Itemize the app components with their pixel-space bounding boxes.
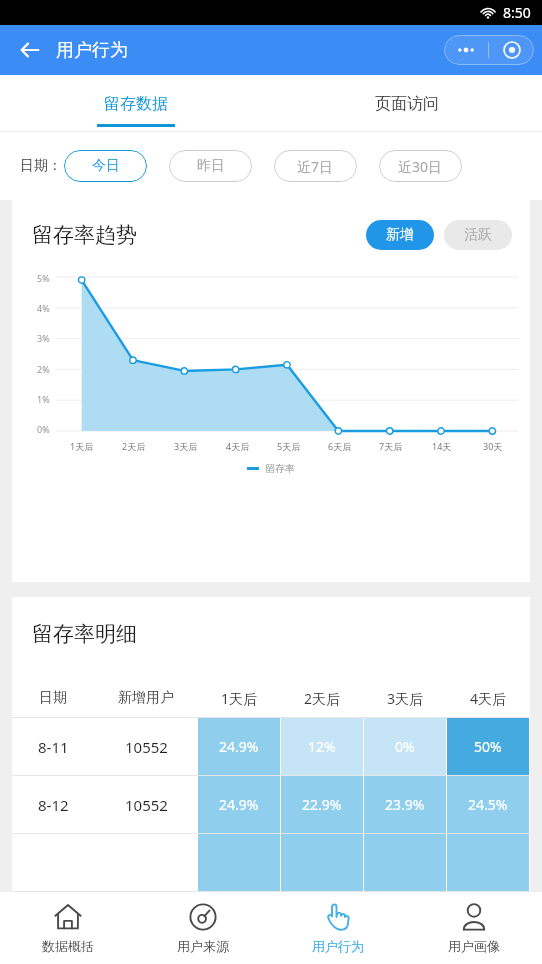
staticText: 留存率明细 [32, 621, 137, 647]
staticText: 0% [37, 423, 50, 435]
button[interactable]: 近30日 [379, 150, 462, 182]
staticText: 留存率趋势 [32, 222, 137, 248]
button[interactable]: 今日 [64, 150, 147, 182]
staticText: 24.9% [219, 795, 259, 814]
staticText: 5天后 [277, 440, 301, 452]
button[interactable]: 页面访问 [271, 75, 542, 132]
staticText: 页面访问 [375, 94, 439, 114]
staticText: 50% [474, 737, 502, 756]
staticText: 12% [308, 737, 336, 756]
button[interactable] [12, 834, 530, 891]
button[interactable]: 留存数据 [0, 75, 271, 132]
staticText: 2天后 [304, 689, 341, 708]
button[interactable]: 数据概括 [0, 892, 135, 964]
staticText: 1天后 [221, 689, 258, 708]
staticText: 数据概括 [42, 938, 94, 954]
staticText: 3% [37, 332, 50, 344]
staticText: 近7日 [297, 157, 334, 176]
staticText: 3天后 [387, 689, 424, 708]
button[interactable]: 新增 [366, 220, 434, 250]
staticText: 5% [37, 272, 50, 284]
staticText: 23.9% [385, 795, 425, 814]
staticText: 留存率 [265, 462, 295, 475]
staticText: 用户画像 [448, 938, 500, 954]
staticText: 4% [37, 302, 50, 314]
staticText: 日期： [20, 157, 62, 175]
button[interactable]: Close [489, 35, 534, 65]
staticText: 4天后 [226, 440, 250, 452]
staticText: 6天后 [328, 440, 352, 452]
staticText: 1天后 [70, 440, 94, 452]
staticText: 3天后 [174, 440, 198, 452]
button[interactable]: 8-11 [12, 718, 530, 775]
staticText: 用户来源 [177, 938, 229, 954]
button[interactable]: 活跃 [444, 220, 512, 250]
staticText: 0% [395, 737, 415, 756]
staticText: 30天 [483, 440, 503, 452]
staticText: 新增 [386, 226, 414, 244]
staticText: 昨日 [197, 157, 225, 175]
staticText: 2天后 [122, 440, 146, 452]
staticText: 用户行为 [312, 938, 364, 954]
staticText: 新增用户 [118, 689, 174, 707]
staticText: 留存数据 [104, 94, 168, 114]
button[interactable]: 用户来源 [135, 892, 270, 964]
button[interactable]: 近7日 [274, 150, 357, 182]
staticText: 4天后 [470, 689, 507, 708]
staticText: 用户行为 [56, 39, 128, 62]
staticText: 7天后 [379, 440, 403, 452]
staticText: 2% [37, 363, 50, 375]
button[interactable]: More [444, 35, 488, 65]
button[interactable]: Back [12, 32, 48, 68]
staticText: 8-12 [38, 795, 69, 815]
button[interactable]: 8-12 [12, 776, 530, 833]
button[interactable]: 用户行为 [270, 892, 406, 964]
staticText: 24.9% [219, 737, 259, 756]
staticText: 近30日 [398, 157, 443, 176]
staticText: 8-11 [38, 737, 69, 757]
staticText: 活跃 [464, 226, 492, 244]
staticText: 22.9% [302, 795, 342, 814]
staticText: 10552 [125, 737, 168, 757]
staticText: 24.5% [468, 795, 508, 814]
staticText: 日期 [39, 689, 67, 707]
staticText: 8:50 [503, 3, 531, 22]
staticText: 1% [37, 393, 50, 405]
staticText: 今日 [92, 157, 120, 175]
staticText: 10552 [125, 795, 168, 815]
button[interactable]: 用户画像 [406, 892, 542, 964]
staticText: 14天 [432, 440, 452, 452]
button[interactable]: 昨日 [169, 150, 252, 182]
